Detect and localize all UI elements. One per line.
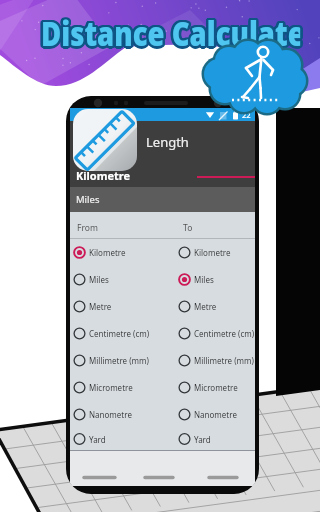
staticText: Distance Calculate	[43, 12, 302, 58]
staticText: Distance Calculate	[40, 8, 299, 54]
staticText: Distance Calculate	[41, 12, 300, 58]
staticText: Millimetre (mm)	[194, 355, 254, 366]
button[interactable]: Millimetre (mm)	[70, 347, 175, 374]
staticText: Distance Calculate	[42, 11, 301, 57]
button[interactable]: Centimetre (cm)	[70, 320, 175, 347]
staticText: Micrometre	[89, 382, 133, 393]
staticText: Miles	[89, 274, 109, 285]
staticText: Kilometre	[89, 247, 126, 258]
button[interactable]: Nanometre	[70, 401, 175, 428]
staticText: Distance Calculate	[43, 11, 303, 57]
staticText: Distance Calculate	[43, 9, 302, 55]
staticText: Yard	[194, 434, 211, 445]
button[interactable]: Kilometre	[70, 163, 255, 187]
staticText: Distance Calculate	[39, 11, 298, 57]
staticText: Nanometre	[89, 409, 132, 420]
staticText: Distance Calculate	[39, 12, 299, 58]
staticText: Miles	[194, 274, 214, 285]
button[interactable]: Centimetre (cm)	[175, 320, 259, 347]
staticText: Distance Calculate	[39, 10, 298, 56]
staticText: Distance Calculate	[42, 9, 301, 55]
button[interactable]: Millimetre (mm)	[175, 347, 259, 374]
staticText: Distance Calculate	[41, 11, 300, 57]
staticText: Distance Calculate	[43, 8, 302, 54]
staticText: Distance Calculate	[43, 11, 302, 57]
staticText: Distance Calculate	[40, 11, 299, 57]
staticText: Distance Calculate	[41, 13, 300, 59]
staticText: Distance Calculate	[43, 10, 303, 56]
staticText: Distance Calculate	[39, 10, 299, 56]
button[interactable]: Distance Calculate app icon	[73, 109, 137, 171]
button[interactable]: Yard	[70, 428, 175, 450]
staticText: Distance Calculate	[42, 12, 301, 58]
staticText: Centimetre (cm)	[194, 328, 255, 339]
button[interactable]: Yard	[175, 428, 259, 450]
staticText: Distance Calculate	[41, 10, 300, 56]
staticText: Distance Calculate	[42, 8, 301, 54]
button[interactable]: Miles	[175, 266, 259, 293]
button[interactable]: Metre	[70, 293, 175, 320]
staticText: From	[77, 222, 98, 234]
button[interactable]: Miles	[70, 266, 175, 293]
button[interactable]: Micrometre	[175, 374, 259, 401]
staticText: Distance Calculate	[41, 8, 300, 54]
staticText: Miles	[76, 193, 100, 206]
button[interactable]: Metre	[175, 293, 259, 320]
staticText: Distance Calculate	[39, 8, 299, 54]
button[interactable]: Miles	[70, 187, 255, 212]
staticText: Distance Calculate	[41, 10, 300, 56]
staticText: Distance Calculate	[39, 9, 299, 55]
staticText: Nanometre	[194, 409, 237, 420]
staticText: Kilometre	[194, 247, 231, 258]
staticText: Metre	[89, 301, 112, 312]
staticText: Distance Calculate	[39, 9, 298, 55]
staticText: Centimetre (cm)	[89, 328, 150, 339]
staticText: Metre	[194, 301, 217, 312]
staticText: Distance Calculate	[41, 9, 300, 55]
staticText: Length	[146, 133, 189, 151]
staticText: Distance Calculate	[40, 9, 299, 55]
staticText: Distance Calculate	[43, 9, 303, 55]
staticText: Distance Calculate	[42, 10, 301, 56]
button[interactable]: Kilometre	[70, 239, 175, 266]
staticText: Yard	[89, 434, 106, 445]
button[interactable]: Micrometre	[70, 374, 175, 401]
staticText: Micrometre	[194, 382, 238, 393]
staticText: To	[183, 222, 193, 234]
staticText: Millimetre (mm)	[89, 355, 149, 366]
staticText: Distance Calculate	[40, 10, 299, 56]
button[interactable]: Nanometre	[175, 401, 259, 428]
staticText: Kilometre	[76, 168, 131, 183]
staticText: 22	[242, 110, 251, 120]
staticText: Distance Calculate	[40, 12, 299, 58]
staticText: Distance Calculate	[39, 11, 299, 57]
button[interactable]: Kilometre	[175, 239, 259, 266]
staticText: Distance Calculate	[43, 10, 302, 56]
